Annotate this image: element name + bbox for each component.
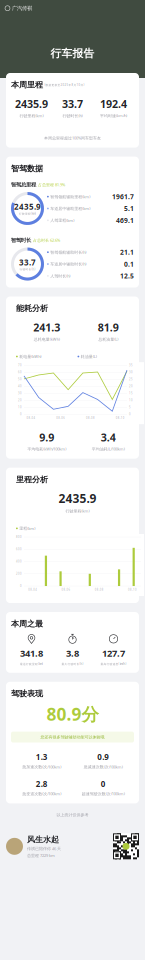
- staticText: 里程(km): [19, 526, 35, 531]
- staticText: 行驶时长(h): [19, 268, 35, 271]
- staticText: 急加速次数(次/100km): [22, 764, 61, 769]
- staticText: 传祺已陪伴你 46 天: [27, 846, 61, 851]
- staticText: 0: [20, 412, 22, 416]
- staticText: 人驾里程(km): [50, 218, 74, 223]
- staticText: 总里程 7229 km: [27, 853, 55, 858]
- staticText: 20: [129, 384, 133, 388]
- staticText: 您还有很多驾驶辅助功能可以体验哦: [40, 735, 104, 739]
- staticText: 20: [18, 398, 22, 402]
- staticText: 耗油量(L): [81, 354, 97, 359]
- staticText: 3.4: [101, 430, 116, 444]
- staticText: 400: [16, 560, 22, 563]
- staticText: 0.9: [97, 751, 109, 762]
- staticText: 智驾领航辅助时长(h): [50, 249, 86, 255]
- staticText: 241.3: [33, 320, 60, 335]
- staticText: 15: [129, 391, 133, 395]
- staticText: 08-08: [95, 588, 104, 591]
- staticText: 本周里程: [11, 80, 43, 90]
- staticText: 600: [16, 547, 22, 551]
- staticText: 1.3: [36, 751, 48, 762]
- staticText: 192.4: [100, 97, 127, 111]
- staticText: 0: [20, 584, 22, 588]
- staticText: (数据更新至2025年8月10日): [44, 83, 84, 87]
- staticText: 2435.9: [15, 97, 48, 111]
- staticText: 总耗电量(kWh): [34, 336, 60, 342]
- staticText: 2.8: [36, 778, 48, 789]
- button[interactable]: 广汽传祺: [5, 5, 32, 12]
- staticText: 08-06: [61, 588, 70, 591]
- staticText: 08-10: [116, 416, 125, 420]
- staticText: 0.1: [124, 260, 134, 268]
- staticText: 08-04: [28, 588, 37, 591]
- staticText: 127.7: [102, 647, 125, 659]
- staticText: 本周总里程超过100%同车型车友: [44, 135, 101, 141]
- staticText: 10: [129, 398, 133, 402]
- staticText: 最高行驶速度(km/h): [100, 662, 126, 666]
- staticText: 行驶时长(h): [62, 113, 82, 118]
- staticText: 3.8: [66, 647, 79, 659]
- staticText: 最远行驶里程(km): [20, 662, 43, 666]
- staticText: 50: [18, 377, 22, 381]
- staticText: 25: [129, 377, 133, 381]
- staticText: 行驶里程(km): [65, 508, 89, 514]
- staticText: 200: [16, 572, 22, 575]
- staticText: 10: [18, 405, 22, 409]
- staticText: 超速驾驶次数(次/100km): [82, 791, 125, 796]
- staticText: 人驾时长(h): [50, 273, 70, 278]
- staticText: 5.1: [124, 204, 134, 213]
- staticText: 30: [129, 370, 133, 374]
- staticText: 08-04: [26, 416, 35, 420]
- staticText: 行驶里程(km): [19, 113, 43, 118]
- staticText: 1961.7: [112, 192, 134, 201]
- staticText: 智驾时长: [11, 237, 31, 244]
- staticText: 风生水起: [27, 835, 59, 844]
- staticText: 800: [16, 535, 22, 539]
- staticText: 占总里程 81.9%: [38, 182, 65, 187]
- staticText: 2435.9: [58, 490, 96, 506]
- staticText: 341.8: [20, 647, 43, 659]
- staticText: 智驾总里程: [11, 181, 36, 188]
- staticText: 08-06: [56, 416, 65, 420]
- staticText: 21.1: [120, 248, 134, 257]
- staticText: 0: [129, 412, 131, 416]
- staticText: 9.9: [39, 430, 54, 444]
- staticText: 平均时速(km/h): [100, 113, 127, 118]
- staticText: 33.7: [62, 97, 83, 111]
- staticText: 81.9: [98, 320, 119, 335]
- staticText: 驾驶表现: [11, 689, 43, 699]
- staticText: 行驶里程(km): [19, 212, 36, 215]
- staticText: 急变道次数(次/100km): [22, 791, 61, 796]
- staticText: 广汽传祺: [12, 5, 32, 12]
- staticText: 469.1: [116, 216, 134, 225]
- staticText: 能耗分析: [16, 303, 48, 313]
- staticText: 耗电量(kWh): [19, 354, 41, 359]
- staticText: 平均电耗(kWh/100km): [27, 446, 66, 452]
- staticText: 总耗油量(L): [98, 336, 118, 342]
- staticText: 80.9分: [46, 703, 98, 726]
- staticText: 5: [129, 405, 131, 409]
- staticText: 平均油耗(L/100km): [92, 446, 125, 452]
- staticText: 35: [129, 363, 133, 367]
- staticText: 33.7: [19, 257, 36, 268]
- staticText: 急减速次数(次/100km): [84, 764, 123, 769]
- staticText: 60: [18, 370, 22, 374]
- staticText: 车道居中辅助里程(km): [50, 206, 90, 211]
- staticText: 08-10: [128, 588, 137, 591]
- staticText: 行车报告: [50, 47, 94, 60]
- staticText: 智驾数据: [11, 164, 43, 173]
- staticText: 30: [18, 391, 22, 395]
- staticText: 智驾领航辅助里程(km): [50, 194, 90, 199]
- staticText: 08-08: [86, 416, 95, 420]
- staticText: 里程分析: [16, 475, 48, 484]
- staticText: 0: [101, 778, 106, 789]
- staticText: 12.5: [120, 271, 134, 280]
- staticText: 2435.9: [14, 201, 41, 212]
- staticText: 本周之最: [11, 619, 43, 629]
- staticText: 40: [18, 384, 22, 388]
- staticText: 最久行驶时长(h): [61, 662, 83, 666]
- staticText: 以上统计仅供参考: [56, 812, 88, 817]
- staticText: 70: [18, 363, 22, 367]
- staticText: 车道居中辅助时长(h): [50, 261, 86, 267]
- staticText: 占总时长 62.6%: [33, 238, 60, 243]
